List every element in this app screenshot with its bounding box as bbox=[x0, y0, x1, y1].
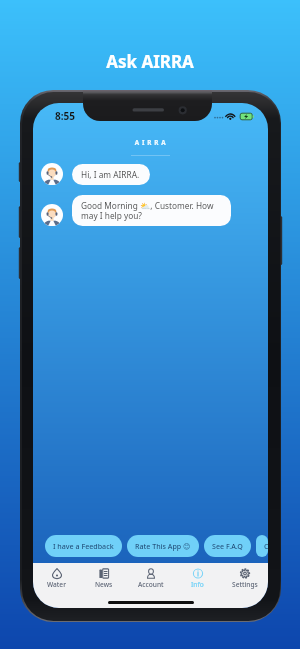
staticText: Hi, I am AIRRA. bbox=[81, 169, 140, 180]
staticText: 8:55 bbox=[55, 109, 75, 123]
staticText: News bbox=[95, 580, 113, 589]
staticText: Rate This App 😊 bbox=[135, 541, 191, 551]
other: Info bbox=[193, 568, 203, 579]
staticText: See F.A.Q bbox=[212, 541, 243, 551]
staticText: A I R R A bbox=[33, 138, 268, 147]
staticText: I have a Feedback bbox=[53, 541, 114, 551]
other: Account bbox=[146, 568, 156, 579]
staticText: Ask AIRRA bbox=[0, 50, 300, 73]
button[interactable]: See F.A.Q bbox=[204, 535, 251, 557]
staticText: Good Morning ⛅, Customer. How may I help… bbox=[81, 200, 221, 221]
button[interactable]: Co bbox=[256, 535, 268, 557]
button[interactable]: Settings bbox=[221, 563, 268, 608]
button[interactable]: Good Morning ⛅, Customer. How may I help… bbox=[72, 195, 231, 226]
staticText: Settings bbox=[232, 580, 258, 589]
button[interactable]: Hi, I am AIRRA. bbox=[72, 164, 150, 185]
staticText: Water bbox=[47, 580, 66, 589]
staticText: Account bbox=[138, 580, 164, 589]
button[interactable]: Rate This App 😊 bbox=[127, 535, 199, 557]
button[interactable]: I have a Feedback bbox=[45, 535, 122, 557]
other: News bbox=[99, 568, 109, 579]
button[interactable]: Info bbox=[174, 563, 221, 608]
other: Settings bbox=[240, 568, 250, 579]
button[interactable]: News bbox=[80, 563, 127, 608]
other: Water bbox=[52, 568, 62, 579]
staticText: Info bbox=[191, 580, 204, 589]
button[interactable]: Water bbox=[33, 563, 80, 608]
button[interactable]: Account bbox=[127, 563, 174, 608]
